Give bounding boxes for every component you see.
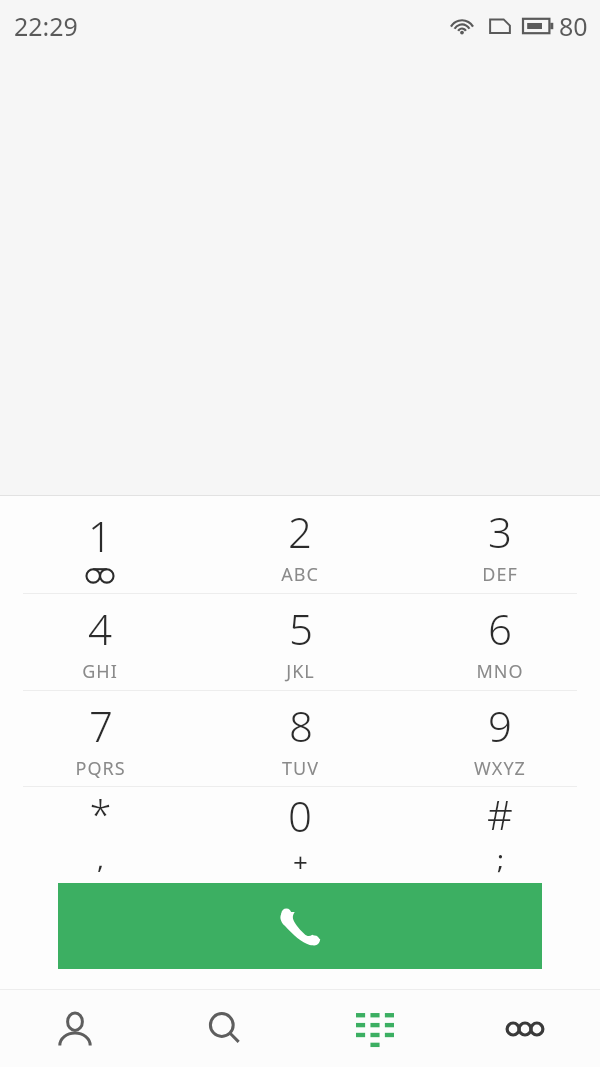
button[interactable]: 4 <box>0 594 200 690</box>
button[interactable]: Call <box>58 883 542 969</box>
staticText: TUV <box>282 756 319 781</box>
staticText: , <box>97 841 104 875</box>
staticText: 5 <box>289 600 313 657</box>
button[interactable]: Dialpad <box>300 990 450 1067</box>
button[interactable]: * <box>0 787 200 875</box>
button[interactable]: 9 <box>400 691 600 786</box>
button[interactable]: 0 <box>200 787 400 875</box>
button[interactable]: 6 <box>400 594 600 690</box>
staticText: # <box>487 787 513 841</box>
staticText: + <box>293 844 308 875</box>
staticText: 0 <box>288 787 312 844</box>
staticText: 7 <box>89 697 113 754</box>
button[interactable]: # <box>400 787 600 875</box>
staticText: 80 <box>559 9 588 43</box>
button[interactable]: Search <box>150 990 300 1067</box>
staticText: 8 <box>289 697 313 754</box>
staticText: DEF <box>482 562 518 587</box>
button[interactable]: 1 <box>0 496 200 593</box>
staticText: 4 <box>88 600 112 657</box>
staticText: ABC <box>281 562 319 587</box>
staticText: 2 <box>288 503 312 560</box>
button[interactable]: 3 <box>400 496 600 593</box>
staticText: 3 <box>488 503 512 560</box>
staticText: WXYZ <box>474 756 526 781</box>
staticText: MNO <box>476 659 524 684</box>
button[interactable]: 2 <box>200 496 400 593</box>
button[interactable]: 8 <box>200 691 400 786</box>
staticText: * <box>89 787 112 841</box>
staticText: ; <box>497 841 504 875</box>
staticText: 9 <box>488 697 512 754</box>
staticText: JKL <box>286 659 315 684</box>
staticText: 1 <box>88 507 112 564</box>
staticText: 6 <box>488 600 512 657</box>
staticText: 22:29 <box>14 9 78 43</box>
staticText: PQRS <box>75 756 126 781</box>
button[interactable]: Contacts <box>0 990 150 1067</box>
staticText: GHI <box>82 659 118 684</box>
button[interactable]: 5 <box>200 594 400 690</box>
button[interactable]: 7 <box>0 691 200 786</box>
button[interactable]: More options <box>450 990 600 1067</box>
